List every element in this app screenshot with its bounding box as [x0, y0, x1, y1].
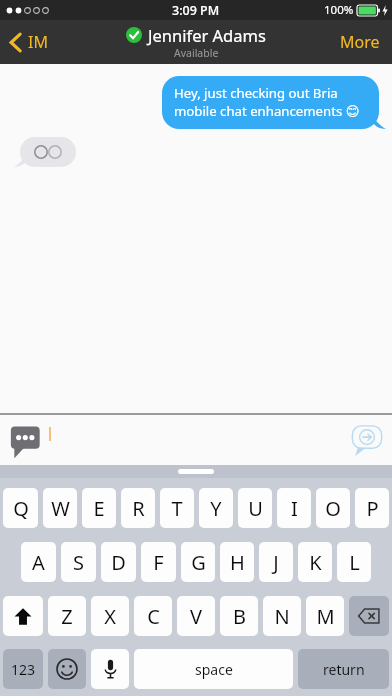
staticText: J: [273, 549, 279, 576]
button[interactable]: More: [328, 23, 392, 61]
button[interactable]: Y: [199, 488, 233, 528]
button[interactable]: Shift: [3, 596, 43, 636]
button[interactable]: 123: [3, 649, 43, 689]
button[interactable]: L: [337, 542, 371, 582]
button[interactable]: G: [181, 542, 215, 582]
staticText: E: [93, 495, 105, 522]
staticText: Hey, just checking out Bria mobile chat …: [174, 84, 368, 120]
button[interactable]: K: [298, 542, 332, 582]
button[interactable]: C: [134, 596, 172, 636]
staticText: V: [190, 603, 202, 630]
button[interactable]: Q: [3, 488, 38, 528]
staticText: C: [147, 603, 160, 630]
staticText: 3:09 PM: [172, 2, 220, 19]
staticText: G: [191, 549, 206, 576]
button[interactable]: Z: [48, 596, 86, 636]
staticText: return: [323, 660, 365, 679]
staticText: B: [233, 603, 246, 630]
staticText: H: [230, 549, 245, 576]
button[interactable]: Dictation: [91, 649, 129, 689]
staticText: 100%: [324, 2, 354, 18]
staticText: A: [32, 549, 45, 576]
staticText: K: [309, 549, 322, 576]
button[interactable]: A: [21, 542, 56, 582]
button[interactable]: M: [306, 596, 344, 636]
staticText: IM: [28, 31, 48, 53]
staticText: W: [51, 495, 70, 522]
button[interactable]: T: [160, 488, 194, 528]
button[interactable]: return: [298, 649, 389, 689]
button[interactable]: S: [61, 542, 96, 582]
button[interactable]: F: [141, 542, 176, 582]
staticText: M: [316, 603, 335, 630]
button[interactable]: J: [259, 542, 293, 582]
staticText: I: [291, 495, 298, 522]
staticText: F: [153, 549, 164, 576]
staticText: S: [73, 549, 84, 576]
staticText: R: [132, 495, 145, 522]
staticText: T: [171, 495, 183, 522]
button[interactable]: R: [121, 488, 155, 528]
button[interactable]: H: [220, 542, 254, 582]
button[interactable]: B: [220, 596, 258, 636]
button[interactable]: IM: [0, 25, 60, 59]
staticText: 123: [11, 660, 36, 679]
other: Shift: [14, 607, 32, 626]
button[interactable]: X: [91, 596, 129, 636]
button[interactable]: space: [134, 649, 293, 689]
button[interactable]: I: [277, 488, 311, 528]
staticText: P: [366, 495, 379, 522]
staticText: U: [248, 495, 263, 522]
staticText: X: [104, 603, 116, 630]
staticText: space: [195, 660, 233, 679]
button[interactable]: Send: [350, 424, 384, 456]
staticText: Available: [174, 46, 219, 60]
button[interactable]: Messages: [8, 423, 44, 457]
button[interactable]: Delete: [349, 596, 389, 636]
button[interactable]: E: [82, 488, 116, 528]
button[interactable]: O: [316, 488, 350, 528]
button[interactable]: D: [101, 542, 136, 582]
staticText: Y: [210, 495, 222, 522]
staticText: L: [349, 549, 360, 576]
button[interactable]: V: [177, 596, 215, 636]
staticText: Z: [61, 603, 73, 630]
staticText: More: [340, 31, 380, 53]
staticText: Jennifer Adams: [148, 24, 266, 46]
button[interactable]: P: [355, 488, 389, 528]
staticText: O: [325, 495, 341, 522]
button[interactable]: Emoji: [48, 649, 86, 689]
button[interactable]: U: [238, 488, 272, 528]
staticText: D: [111, 549, 126, 576]
button[interactable]: N: [263, 596, 301, 636]
button[interactable]: W: [43, 488, 77, 528]
staticText: Q: [13, 495, 29, 522]
staticText: N: [274, 603, 290, 630]
